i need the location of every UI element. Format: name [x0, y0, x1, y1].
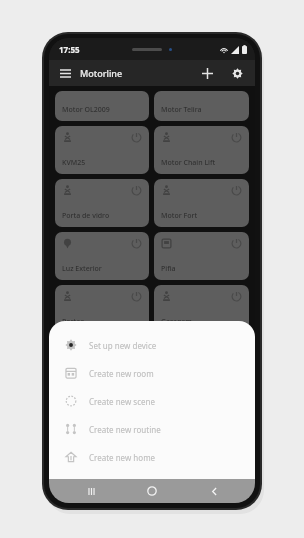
button[interactable]: Create new routine	[49, 415, 255, 443]
staticText: Motor Fort	[161, 211, 198, 221]
button[interactable]: Settings	[227, 63, 247, 83]
button[interactable]: Add	[197, 63, 217, 83]
button[interactable]: Create new scene	[49, 387, 255, 415]
staticText: Set up new device	[89, 340, 157, 351]
button[interactable]: Create new home	[49, 443, 255, 471]
staticText: Motor OL2009	[62, 105, 110, 115]
staticText: KVM25	[62, 158, 86, 168]
button[interactable]: Motor OL2009	[55, 91, 149, 121]
button[interactable]: Motor Fort	[154, 179, 249, 227]
button[interactable]: Set up new device	[49, 331, 255, 359]
button[interactable]: Back	[194, 479, 234, 503]
staticText: Pifia	[161, 264, 176, 274]
button[interactable]: Motor Chain Lift	[154, 126, 249, 174]
staticText: Create new home	[89, 452, 156, 463]
staticText: Create new room	[89, 368, 154, 379]
button[interactable]: Menu	[56, 64, 74, 82]
staticText: Portao	[62, 317, 85, 327]
button[interactable]: Motor Telira	[154, 91, 249, 121]
staticText: Luz Exterior	[62, 264, 102, 274]
button[interactable]: KVM25	[55, 126, 149, 174]
staticText: 17:55	[59, 44, 80, 55]
button[interactable]: Recents	[71, 479, 111, 503]
staticText: Porta de vidro	[62, 211, 110, 221]
staticText: Motor Telira	[161, 105, 202, 115]
button[interactable]: Create new room	[49, 359, 255, 387]
staticText: Motorline	[80, 67, 123, 79]
button[interactable]: Pifia	[154, 232, 249, 280]
button[interactable]: Home	[132, 479, 172, 503]
button[interactable]: Portao	[55, 285, 149, 333]
staticText: Create new scene	[89, 396, 155, 407]
button[interactable]: Porta de vidro	[55, 179, 149, 227]
button[interactable]: Garagem	[154, 285, 249, 333]
staticText: Garagem	[161, 317, 192, 327]
button[interactable]: Luz Exterior	[55, 232, 149, 280]
staticText: Create new routine	[89, 424, 161, 435]
staticText: Motor Chain Lift	[161, 158, 216, 168]
